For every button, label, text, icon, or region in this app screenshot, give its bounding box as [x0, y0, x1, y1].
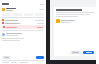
button[interactable]: [2, 2, 44, 6]
button[interactable]: [2, 32, 44, 37]
other: Warning: [2, 8, 5, 11]
button[interactable]: Confirm: [83, 51, 94, 54]
button[interactable]: [2, 25, 44, 29]
button[interactable]: Cancel: [70, 51, 81, 54]
button[interactable]: [2, 56, 11, 59]
button[interactable]: [2, 22, 44, 24]
button[interactable]: Continue: [36, 56, 44, 59]
button[interactable]: Warning: [2, 7, 44, 12]
button[interactable]: [2, 19, 44, 21]
other: Alert: [56, 19, 60, 23]
